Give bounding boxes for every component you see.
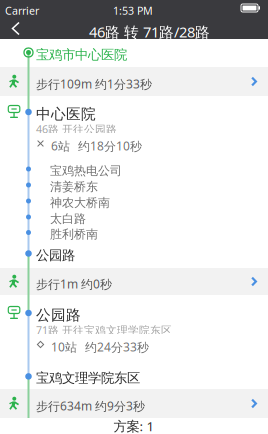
- button[interactable]: 6站 约18分10秒: [36, 133, 196, 154]
- staticText: 46路 转 71路/28路: [89, 22, 210, 41]
- staticText: 71路 开往宝鸡文理学院东区: [36, 323, 172, 337]
- staticText: 方案: 1: [113, 417, 154, 434]
- staticText: 46路 开往公园路: [36, 122, 117, 136]
- staticText: 步行1m 约0秒: [36, 276, 112, 292]
- staticText: 公园路: [36, 306, 81, 324]
- staticText: 神农大桥南: [50, 195, 110, 210]
- staticText: 公园路: [36, 247, 75, 263]
- staticText: 太白路: [50, 211, 86, 226]
- button[interactable]: 步行109m 约1分33秒: [0, 67, 268, 96]
- button[interactable]: 步行634m 约9分3秒: [0, 389, 268, 418]
- staticText: 1:53 PM: [113, 3, 153, 18]
- staticText: 步行634m 约9分3秒: [36, 398, 145, 414]
- button[interactable]: 10站 约24分33秒: [36, 334, 196, 355]
- staticText: 10站 约24分33秒: [51, 339, 149, 355]
- staticText: 步行109m 约1分33秒: [36, 76, 152, 92]
- staticText: 清姜桥东: [50, 179, 98, 194]
- staticText: 6站 约18分10秒: [51, 138, 142, 154]
- button[interactable]: Back: [3, 18, 29, 39]
- staticText: Carrier: [5, 3, 39, 18]
- staticText: 宝鸡文理学院东区: [36, 370, 140, 386]
- staticText: 宝鸡市中心医院: [36, 46, 127, 63]
- staticText: 中心医院: [36, 105, 96, 123]
- staticText: 宝鸡热电公司: [50, 163, 122, 178]
- staticText: 胜利桥南: [50, 227, 98, 242]
- button[interactable]: 步行1m 约0秒: [0, 268, 268, 295]
